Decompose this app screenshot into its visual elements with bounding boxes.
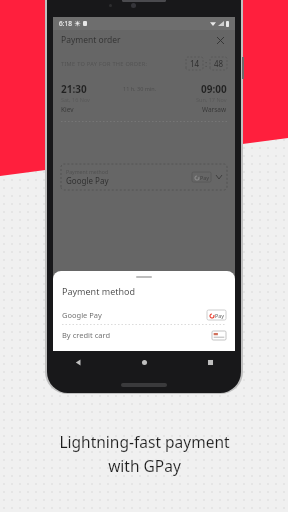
staticText: Google Pay (62, 310, 102, 320)
staticText: 6:18 (59, 19, 72, 28)
button[interactable]: Close (213, 33, 227, 47)
staticText: Pay (215, 312, 224, 319)
staticText: 09:00 (201, 82, 227, 96)
staticText: Google Pay (66, 175, 109, 186)
staticText: 21:30 (61, 82, 87, 96)
staticText: 14 (190, 58, 200, 69)
staticText: Payment order (61, 34, 121, 46)
button[interactable]: By credit card (53, 325, 235, 345)
staticText: Payment method (62, 285, 136, 297)
staticText: Lightning-fast payment (59, 431, 230, 452)
staticText: Kiev (61, 105, 74, 114)
staticText: 48 (214, 58, 224, 69)
staticText: TIME TO PAY FOR THE ORDER: (61, 60, 148, 68)
staticText: with GPay (108, 455, 181, 476)
staticText: By credit card (62, 330, 110, 340)
staticText: Payment method (66, 168, 109, 175)
staticText: Sat, 16 Nov (61, 96, 90, 103)
button[interactable]: Payment method (61, 164, 227, 190)
button[interactable]: Recents (177, 351, 243, 374)
staticText: Pay (200, 174, 209, 181)
button[interactable]: Google Pay (53, 306, 235, 324)
staticText: : (205, 58, 208, 69)
button[interactable]: Back (45, 351, 111, 374)
button[interactable]: Home (111, 351, 177, 374)
staticText: Sun, 17 Nov (196, 96, 227, 103)
staticText: Warsaw (202, 105, 227, 114)
staticText: 11 h. 30 min. (123, 85, 157, 92)
